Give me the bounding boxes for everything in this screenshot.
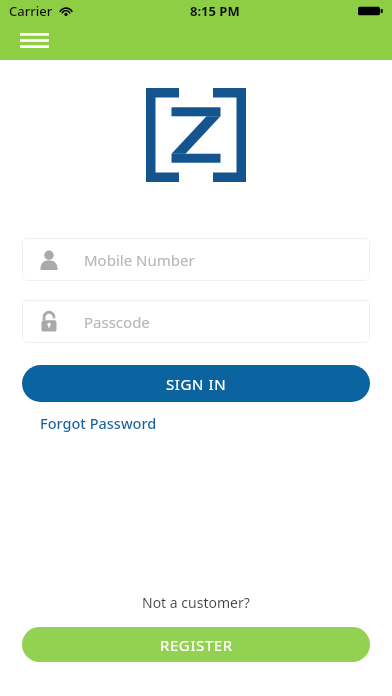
staticText: 8:15 PM [190,2,240,20]
staticText: SIGN IN [166,374,227,394]
staticText: Forgot Password [40,413,157,433]
button[interactable]: REGISTER [22,627,370,662]
staticText: Not a customer? [142,593,250,612]
button[interactable]: SIGN IN [22,365,370,402]
button[interactable]: Menu [8,23,60,57]
button[interactable]: Passcode [22,300,370,343]
button[interactable]: Mobile Number [22,238,370,281]
staticText: Passcode [84,312,150,332]
staticText: Mobile Number [84,250,195,270]
staticText: REGISTER [160,635,233,655]
staticText: Carrier [9,2,53,20]
button[interactable]: Forgot Password [40,413,157,433]
